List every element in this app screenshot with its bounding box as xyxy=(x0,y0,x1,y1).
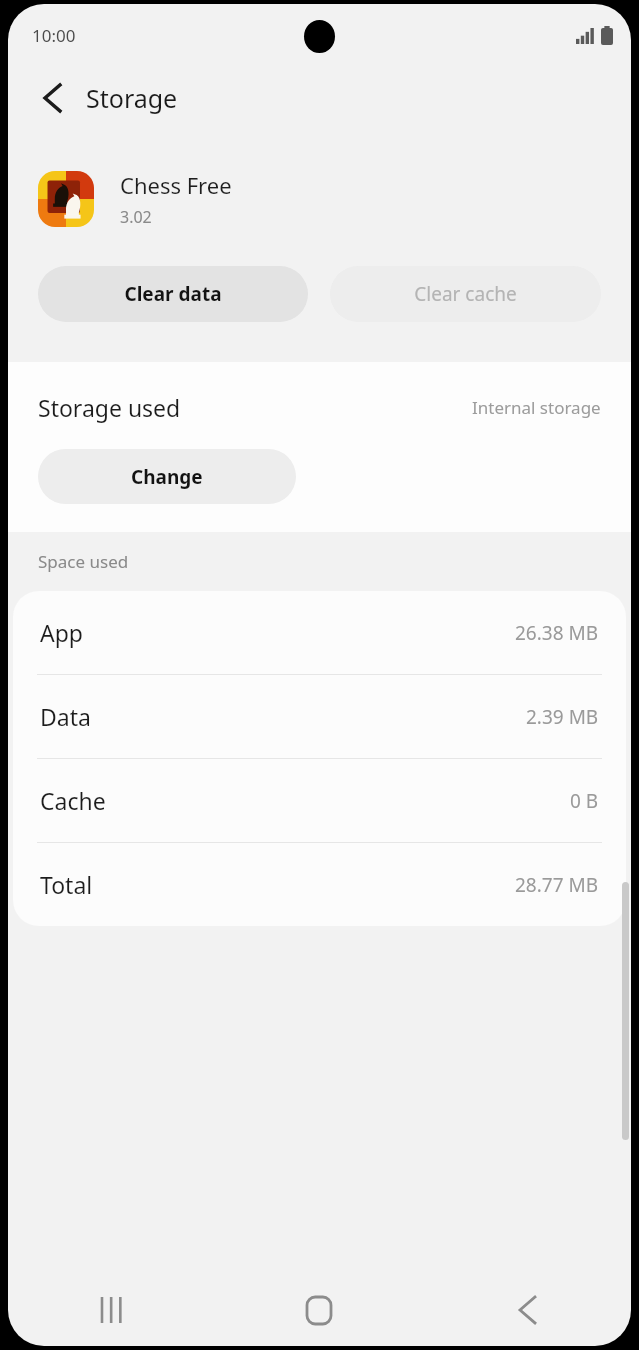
button[interactable]: Cache xyxy=(13,759,626,842)
staticText: App xyxy=(40,617,83,648)
staticText: 2.39 MB xyxy=(526,704,599,730)
button[interactable]: App xyxy=(13,591,626,674)
staticText: 0 B xyxy=(570,788,599,814)
staticText: Space used xyxy=(38,550,129,573)
staticText: Change xyxy=(131,464,203,490)
staticText: 10:00 xyxy=(32,24,76,47)
button[interactable]: Clear cache xyxy=(330,266,601,322)
staticText: Clear data xyxy=(124,281,222,307)
staticText: Chess Free xyxy=(120,170,232,200)
staticText: Storage xyxy=(86,81,178,115)
staticText: Internal storage xyxy=(472,396,601,419)
button[interactable]: Clear data xyxy=(38,266,308,322)
button[interactable]: Recents xyxy=(8,1274,215,1346)
staticText: Cache xyxy=(40,785,106,816)
staticText: 28.77 MB xyxy=(515,872,599,898)
button[interactable]: Back xyxy=(423,1274,631,1346)
button[interactable]: Total xyxy=(13,843,626,926)
staticText: 3.02 xyxy=(120,206,152,228)
button[interactable]: Change xyxy=(38,449,296,504)
staticText: 26.38 MB xyxy=(515,620,599,646)
staticText: Total xyxy=(40,869,93,900)
staticText: Storage used xyxy=(38,392,181,423)
button[interactable]: Back xyxy=(30,76,74,120)
button[interactable]: Home xyxy=(215,1274,423,1346)
staticText: Data xyxy=(40,701,91,732)
staticText: Clear cache xyxy=(414,281,517,307)
button[interactable]: Data xyxy=(13,675,626,758)
